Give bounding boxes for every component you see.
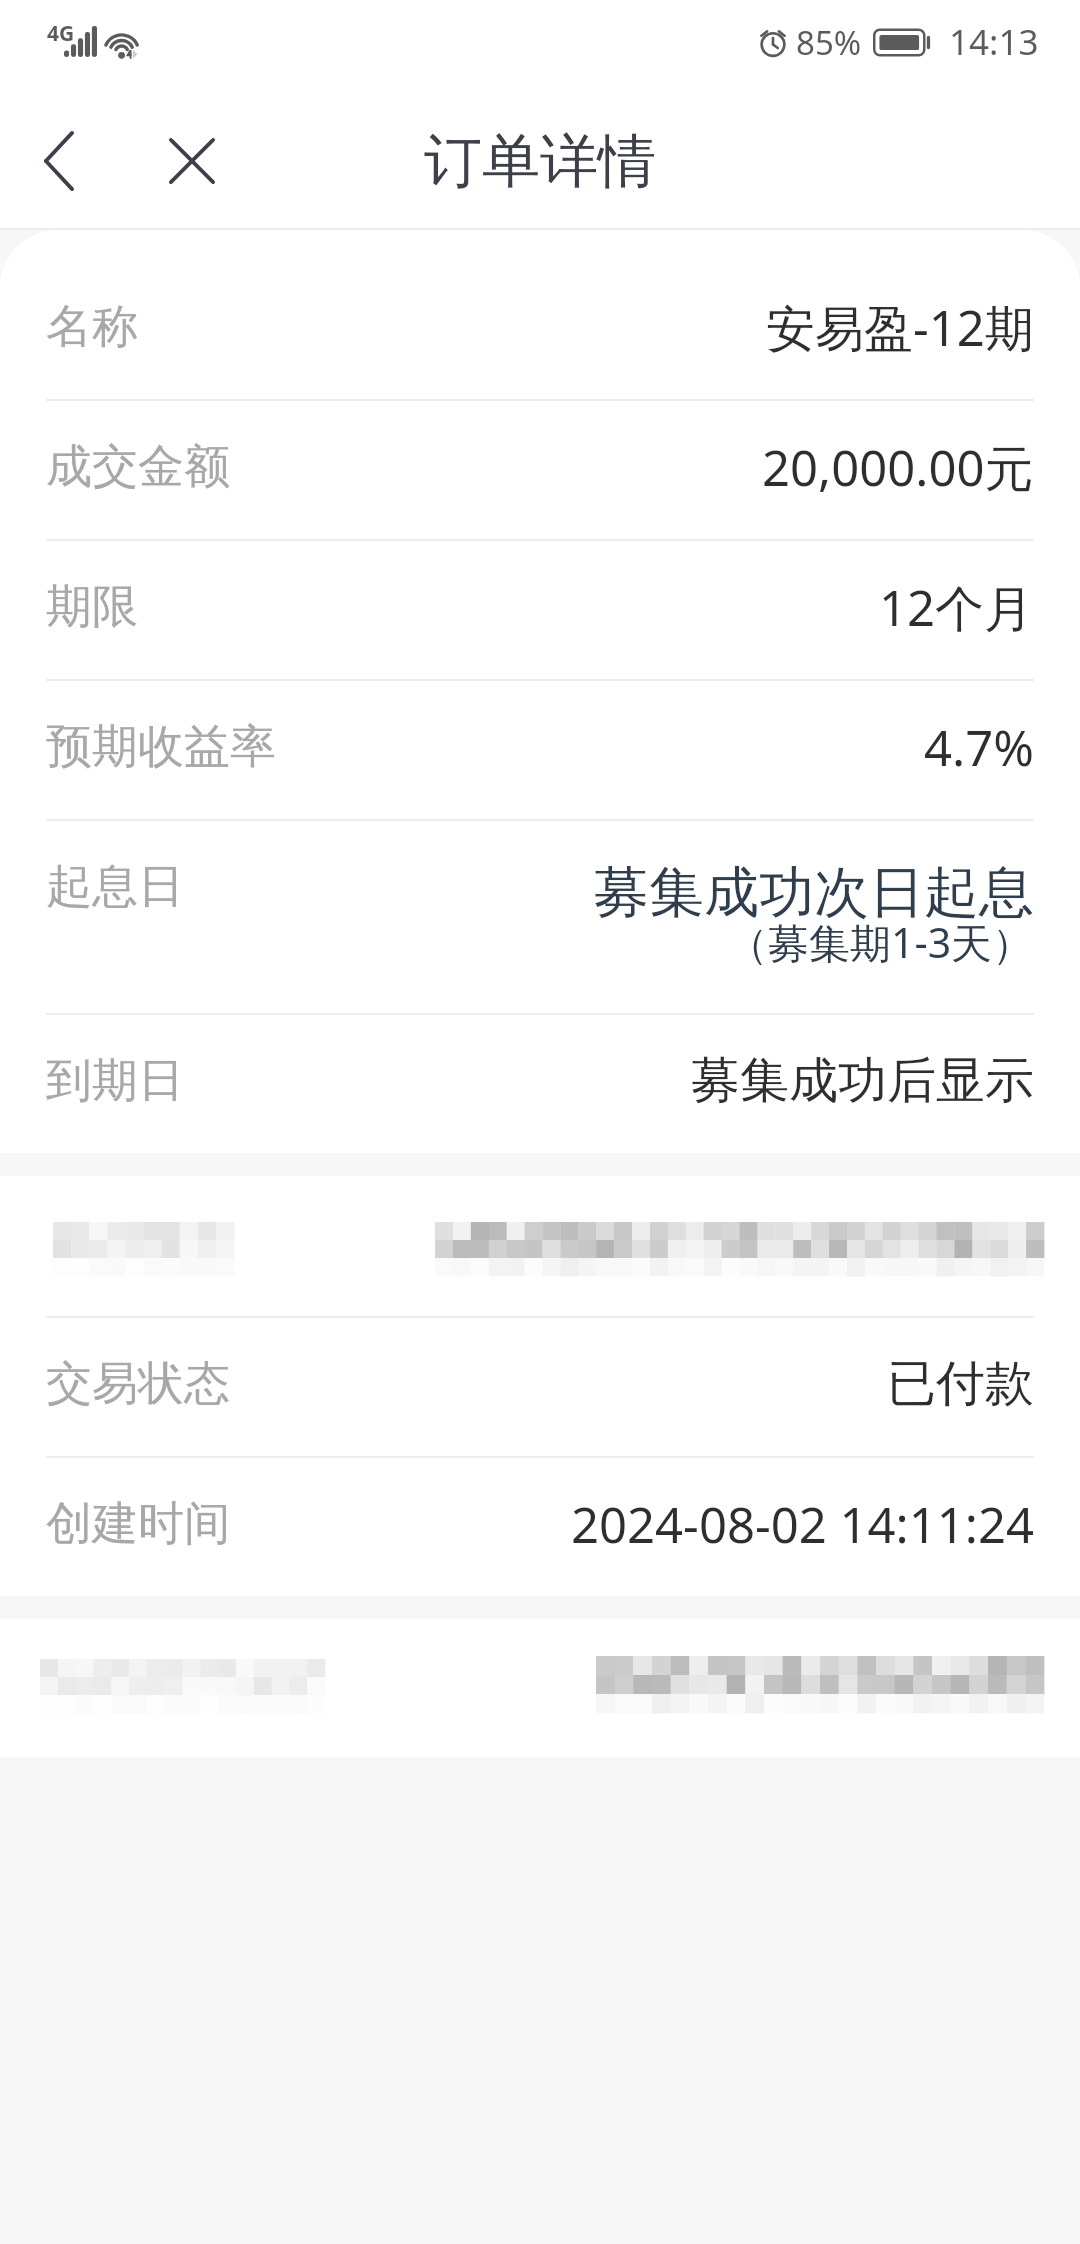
button[interactable] xyxy=(0,1176,1080,1316)
staticText: 交易状态 xyxy=(46,1355,230,1413)
staticText: 4.7% xyxy=(924,714,1034,781)
button[interactable]: 创建时间 xyxy=(0,1458,1080,1596)
staticText: 募集成功次日起息 xyxy=(594,858,1034,927)
button[interactable]: 交易状态 xyxy=(0,1318,1080,1456)
button[interactable] xyxy=(0,1619,1080,1757)
staticText: 期限 xyxy=(46,578,138,636)
staticText: 85% xyxy=(796,20,862,65)
button[interactable]: Back xyxy=(14,116,104,206)
button[interactable]: Close xyxy=(147,116,237,206)
staticText: 20,000.00元 xyxy=(762,434,1034,501)
staticText: 名称 xyxy=(46,298,138,356)
staticText: 已付款 xyxy=(887,1353,1034,1415)
staticText: （募集期1-3天） xyxy=(727,914,1034,970)
button[interactable]: 期限 xyxy=(0,541,1080,679)
button[interactable]: 成交金额 xyxy=(0,401,1080,539)
staticText: 预期收益率 xyxy=(46,718,276,776)
staticText: 14:13 xyxy=(949,18,1039,66)
staticText: 到期日 xyxy=(46,1052,184,1110)
button[interactable]: 到期日 xyxy=(0,1015,1080,1153)
staticText: 12个月 xyxy=(879,574,1034,641)
button[interactable]: 起息日 xyxy=(0,821,1080,1013)
staticText: 2024-08-02 14:11:24 xyxy=(571,1491,1034,1558)
staticText: 成交金额 xyxy=(46,438,230,496)
button[interactable]: 预期收益率 xyxy=(0,681,1080,819)
staticText: 起息日 xyxy=(46,858,184,916)
staticText: 安易盈-12期 xyxy=(766,294,1034,361)
staticText: 订单详情 xyxy=(424,125,656,198)
staticText: 创建时间 xyxy=(46,1495,230,1553)
button[interactable]: 名称 xyxy=(0,261,1080,399)
staticText: 4G xyxy=(47,19,75,48)
staticText: 募集成功后显示 xyxy=(691,1050,1034,1112)
